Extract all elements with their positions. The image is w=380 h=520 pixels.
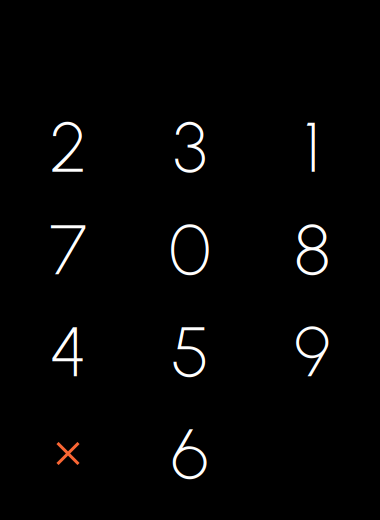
staticText: 4: [49, 309, 86, 394]
button[interactable]: 7: [7, 198, 129, 300]
button[interactable]: 6: [129, 402, 251, 504]
button[interactable]: Delete: [7, 402, 129, 504]
button[interactable]: 1: [251, 95, 373, 198]
staticText: 1: [304, 105, 320, 189]
staticText: 7: [49, 207, 86, 292]
staticText: 8: [294, 207, 330, 292]
staticText: 5: [171, 309, 209, 394]
staticText: 9: [294, 309, 330, 394]
staticText: 2: [49, 105, 86, 189]
button[interactable]: 5: [129, 300, 251, 402]
button[interactable]: 3: [129, 95, 251, 198]
button[interactable]: 8: [251, 198, 373, 300]
button[interactable]: 0: [129, 198, 251, 300]
staticText: 6: [171, 411, 209, 496]
staticText: 3: [173, 105, 207, 189]
button[interactable]: 2: [7, 95, 129, 198]
button[interactable]: 4: [7, 300, 129, 402]
button[interactable]: 9: [251, 300, 373, 402]
staticText: 0: [169, 207, 211, 292]
